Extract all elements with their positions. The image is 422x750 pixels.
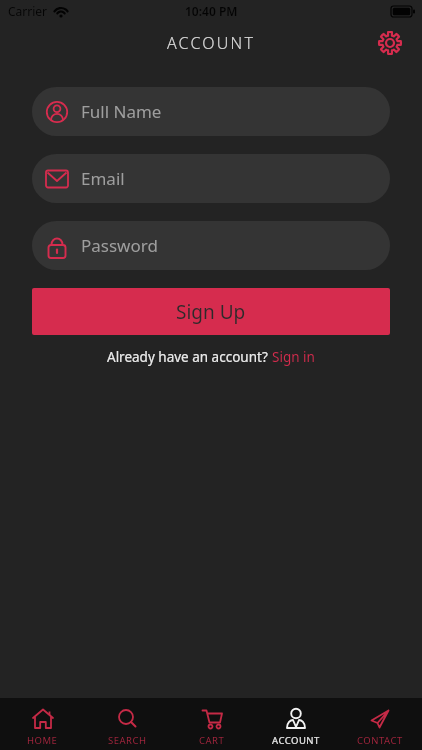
staticText: Sign in [272, 348, 315, 366]
button[interactable]: HOME [0, 698, 85, 750]
staticText: CART [199, 734, 225, 747]
staticText: ACCOUNT [167, 32, 256, 54]
button[interactable]: Email [32, 154, 390, 203]
staticText: Already have an account? [107, 348, 272, 366]
button[interactable]: CART [170, 698, 254, 750]
staticText: Email [81, 167, 125, 190]
staticText: SEARCH [108, 734, 147, 747]
button[interactable]: ACCOUNT [254, 698, 338, 750]
staticText: HOME [27, 734, 58, 747]
button[interactable]: Password [32, 221, 390, 270]
button[interactable]: CONTACT [338, 698, 422, 750]
button[interactable]: Sign Up [32, 288, 390, 335]
staticText: Password [81, 234, 158, 257]
staticText: CONTACT [357, 734, 403, 747]
button[interactable]: Sign in [272, 348, 315, 366]
staticText: ACCOUNT [272, 734, 320, 747]
staticText: 10:40 PM [185, 3, 238, 19]
button[interactable]: Full Name [32, 87, 390, 136]
button[interactable]: SEARCH [85, 698, 170, 750]
staticText: Full Name [81, 100, 162, 123]
staticText: Carrier [8, 3, 48, 19]
staticText: Sign Up [176, 299, 246, 325]
button[interactable] [374, 27, 406, 59]
